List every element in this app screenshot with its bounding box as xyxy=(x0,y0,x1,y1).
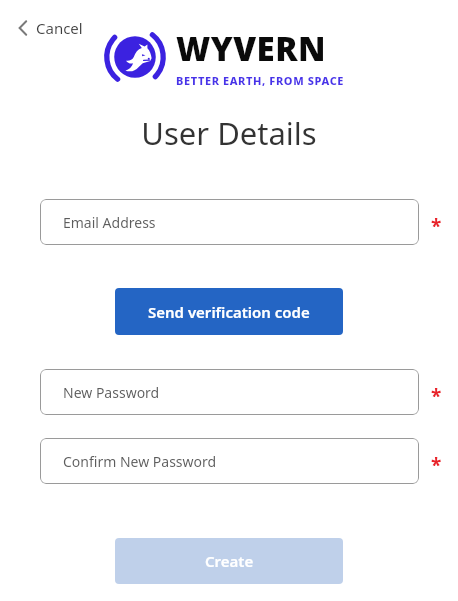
button[interactable]: Cancel xyxy=(12,14,89,42)
button[interactable]: Confirm New Password xyxy=(40,438,419,484)
staticText: Email Address xyxy=(63,213,156,232)
staticText: Cancel xyxy=(36,18,83,38)
staticText: Create xyxy=(205,551,254,571)
staticText: New Password xyxy=(63,383,160,402)
staticText: BETTER EARTH, FROM SPACE xyxy=(176,73,345,88)
button[interactable]: Send verification code xyxy=(115,288,343,335)
staticText: * xyxy=(431,213,442,227)
button[interactable]: New Password xyxy=(40,369,419,415)
staticText: Confirm New Password xyxy=(63,452,217,471)
staticText: * xyxy=(431,452,442,466)
button[interactable]: Create xyxy=(115,538,343,584)
staticText: WYVERN xyxy=(176,26,327,71)
button[interactable]: Email Address xyxy=(40,199,419,245)
staticText: Send verification code xyxy=(148,302,310,322)
staticText: * xyxy=(431,383,442,397)
staticText: User Details xyxy=(141,112,317,154)
